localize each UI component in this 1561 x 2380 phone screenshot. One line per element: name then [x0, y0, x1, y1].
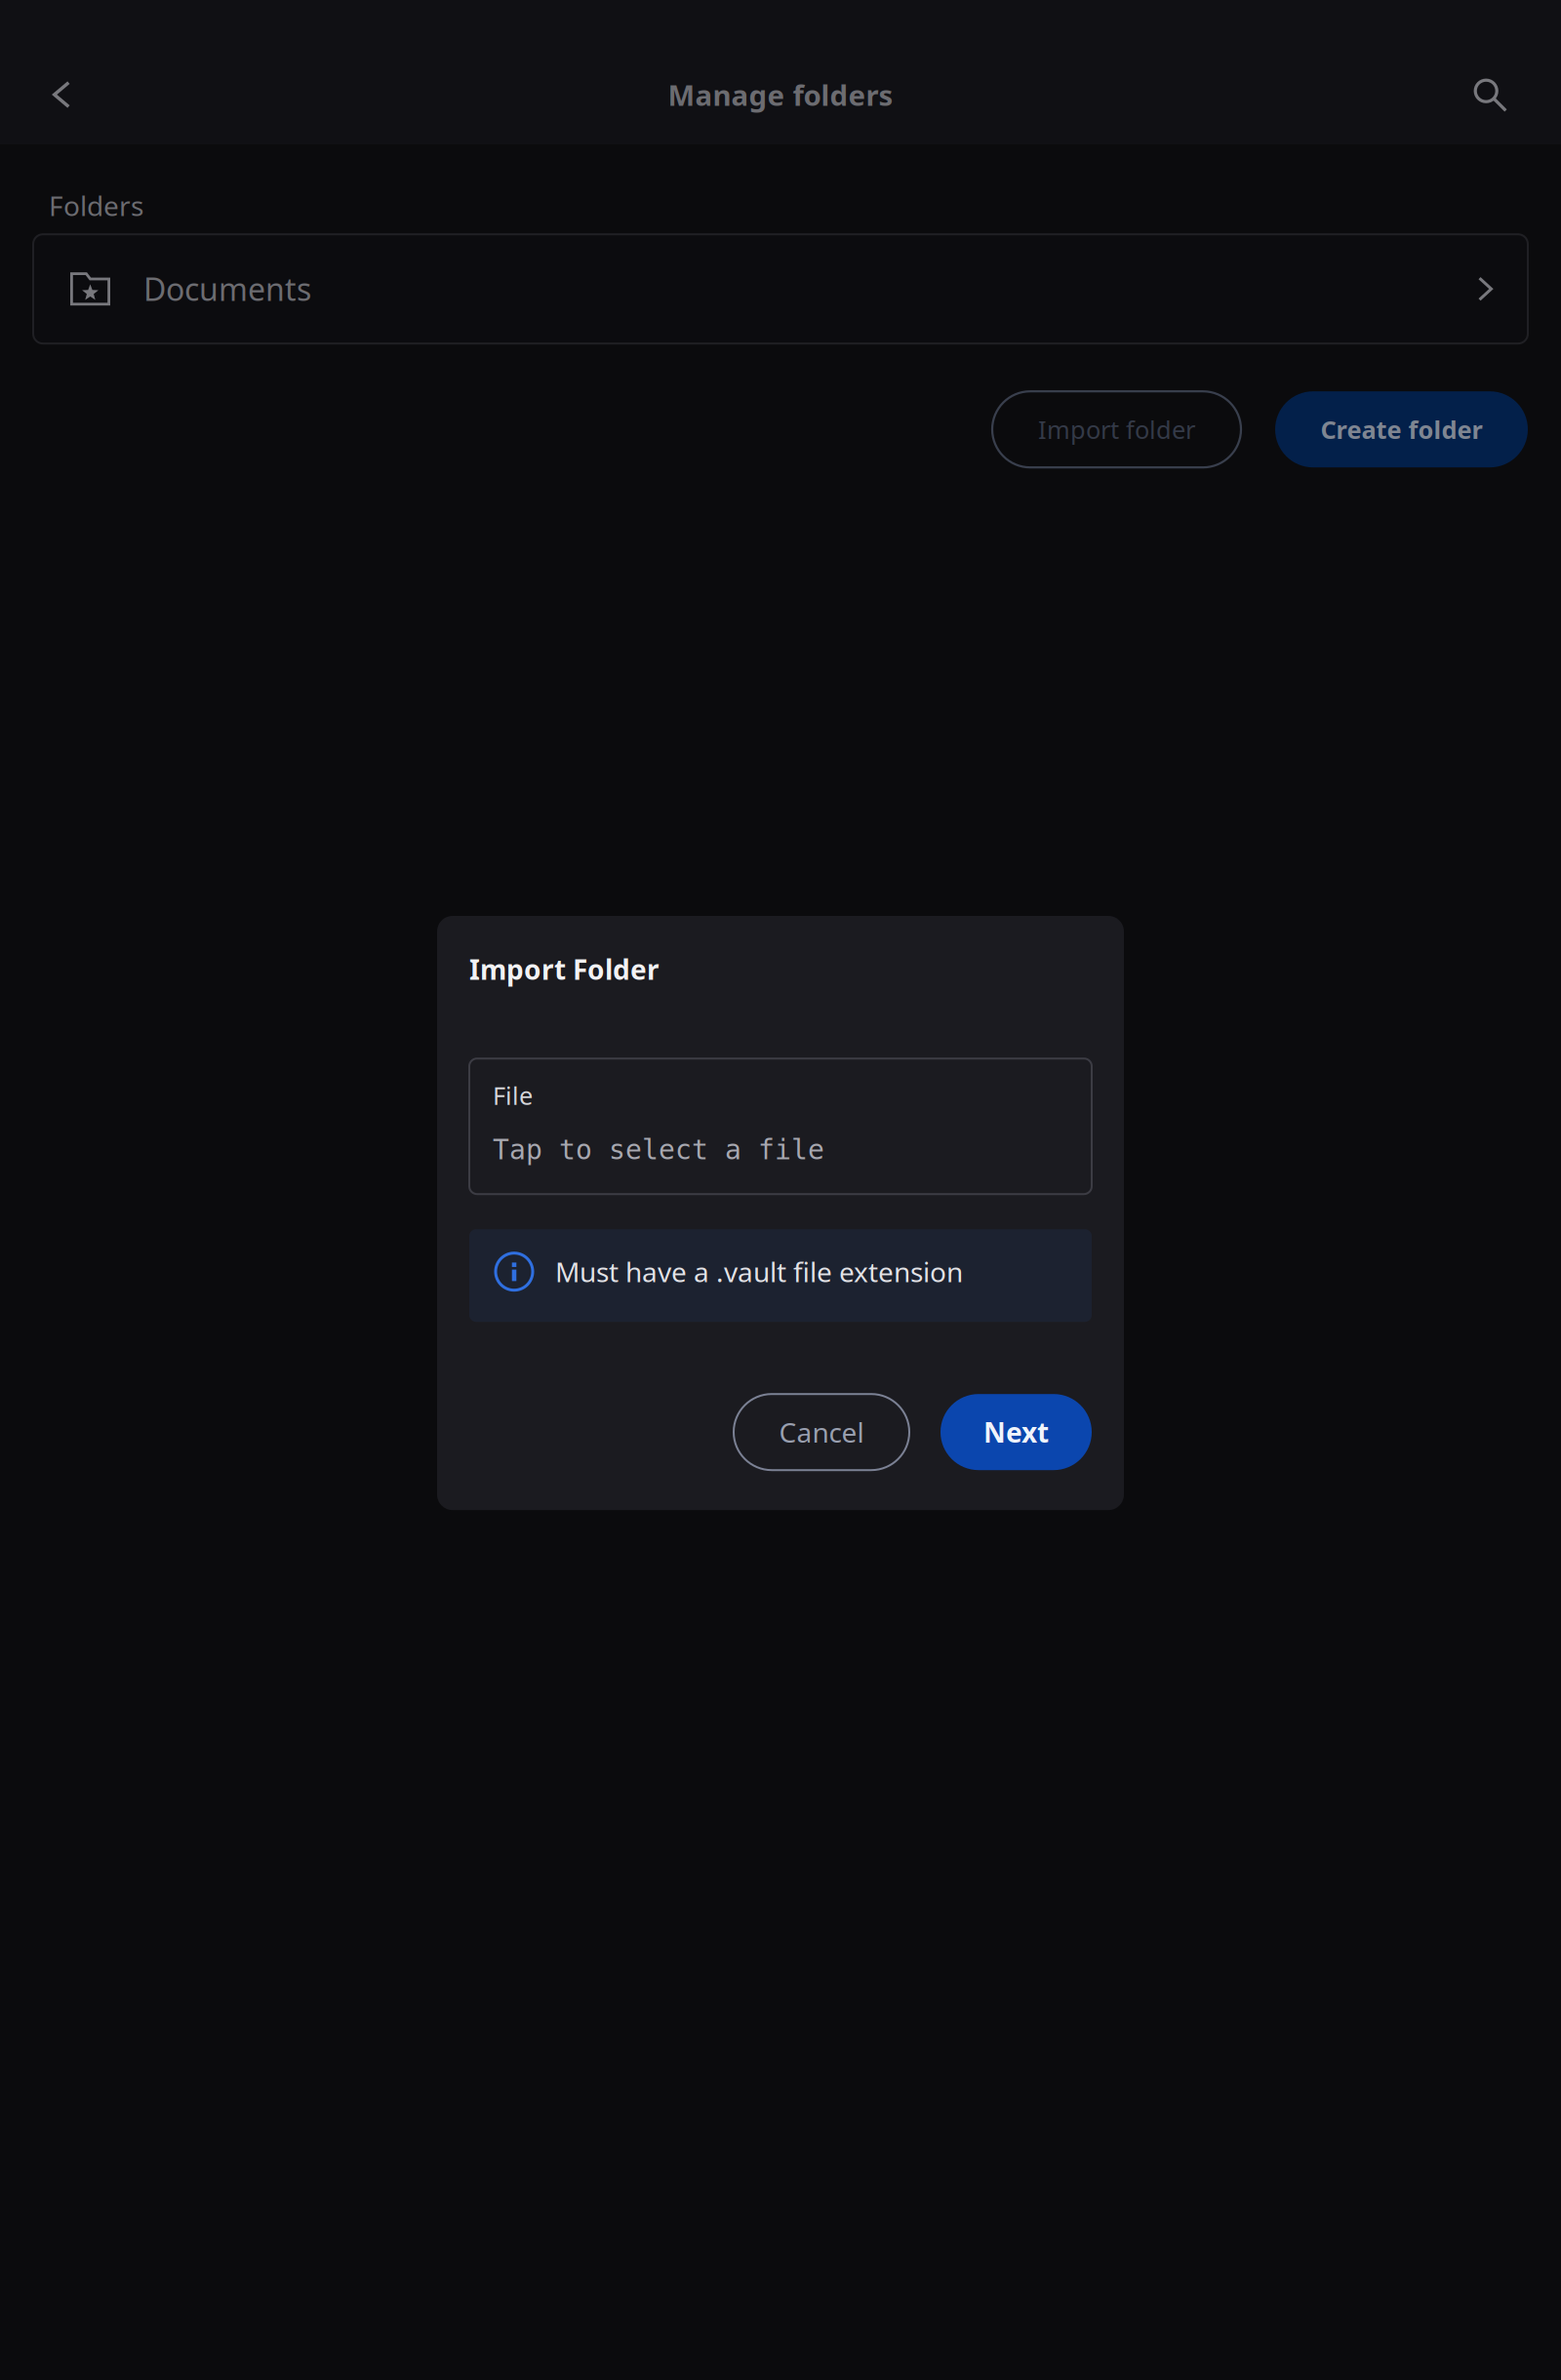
staticText: File — [493, 1079, 533, 1112]
button[interactable]: Documents — [0, 234, 1561, 344]
button[interactable]: Next — [941, 1394, 1092, 1470]
button[interactable]: Search — [1454, 58, 1526, 132]
staticText: Tap to select a file — [493, 1134, 824, 1165]
button[interactable]: Cancel — [734, 1394, 909, 1470]
staticText: Manage folders — [668, 76, 893, 114]
button[interactable]: Back — [25, 58, 98, 132]
staticText: Import folder — [1038, 413, 1195, 446]
staticText: Next — [983, 1414, 1049, 1450]
staticText: Create folder — [1321, 413, 1482, 446]
staticText: Import Folder — [469, 951, 660, 987]
staticText: Must have a .vault file extension — [555, 1253, 963, 1290]
button[interactable]: Import folder — [992, 391, 1241, 467]
button[interactable]: Create folder — [1275, 391, 1528, 467]
staticText: Documents — [143, 268, 311, 310]
staticText: Folders — [49, 187, 143, 224]
staticText: Cancel — [779, 1414, 864, 1450]
